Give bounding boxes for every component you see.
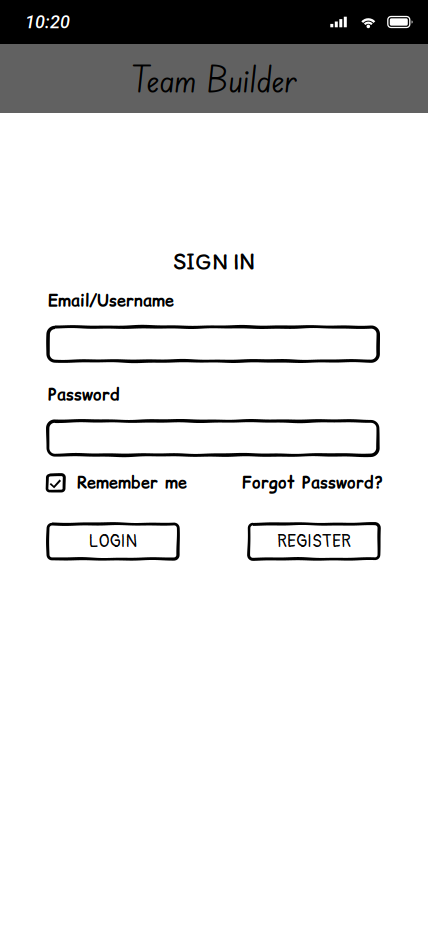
staticText: Email/Username bbox=[48, 290, 174, 312]
staticText: Remember me bbox=[77, 472, 187, 494]
staticText: LOGIN bbox=[88, 531, 137, 552]
staticText: 10:20 bbox=[25, 11, 70, 33]
button[interactable]: Password bbox=[48, 421, 378, 455]
button[interactable]: LOGIN bbox=[48, 524, 178, 559]
staticText: Team Builder bbox=[130, 56, 298, 101]
staticText: Forgot Password? bbox=[242, 472, 383, 494]
button[interactable]: Remember me bbox=[47, 472, 187, 494]
staticText: REGISTER bbox=[277, 531, 351, 552]
button[interactable]: Forgot Password? bbox=[242, 472, 383, 494]
staticText: Password bbox=[48, 384, 120, 406]
button[interactable]: REGISTER bbox=[249, 524, 379, 559]
staticText: SIGN IN bbox=[173, 247, 255, 275]
button[interactable]: Email or username bbox=[48, 327, 378, 361]
